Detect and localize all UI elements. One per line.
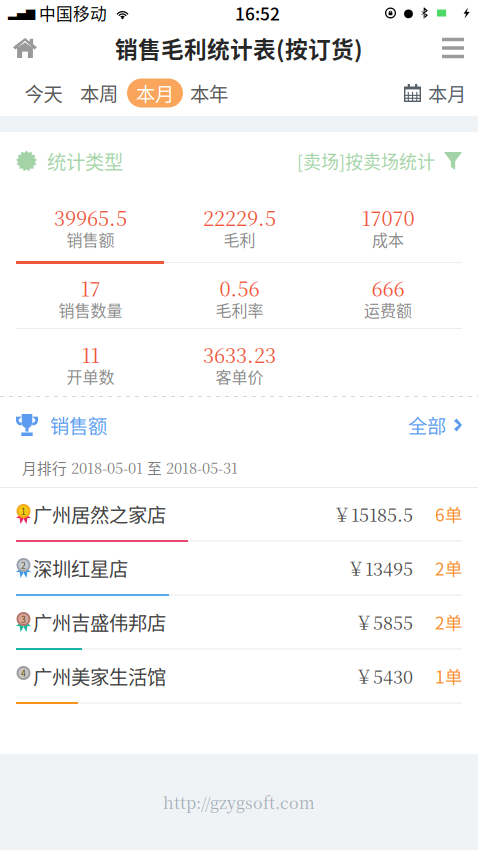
staticText: 17070 (361, 207, 414, 228)
staticText: http://gzygsoft.com (163, 790, 315, 813)
staticText: 1单 (435, 663, 462, 689)
staticText: 11 (81, 344, 99, 365)
staticText: 销售毛利统计表(按订货) (115, 32, 363, 64)
staticText: 2 (21, 559, 26, 571)
staticText: 本月 (136, 79, 174, 107)
button[interactable]: 1 (0, 488, 478, 542)
staticText: 3633.23 (203, 344, 276, 365)
staticText: 开单数 (66, 365, 114, 388)
staticText: 统计类型 (47, 147, 123, 175)
button[interactable]: 4 (0, 650, 478, 704)
staticText: 本月 (428, 79, 466, 107)
staticText: 4 (21, 667, 26, 679)
staticText: 2018-05-01 (71, 457, 143, 478)
staticText: [卖场]按卖场统计 (297, 148, 435, 174)
staticText: 毛利率 (215, 298, 263, 321)
staticText: 运费额 (364, 298, 412, 321)
staticText: ▂▄▆ (8, 6, 35, 20)
button[interactable]: 本周 (71, 76, 127, 110)
button[interactable]: Menu (428, 26, 478, 70)
staticText: 16:52 (235, 0, 280, 26)
button[interactable]: 全部 (408, 411, 462, 439)
staticText: 销售额 (50, 411, 107, 439)
button[interactable]: 3 (0, 596, 478, 650)
button[interactable]: 本年 (183, 76, 235, 110)
staticText: 中国移动 (39, 1, 107, 25)
staticText: ￥13495 (347, 555, 413, 581)
staticText: 2单 (435, 555, 462, 581)
staticText: 毛利 (223, 228, 255, 251)
staticText: ￥5855 (355, 609, 413, 635)
staticText: 至 (147, 457, 162, 478)
staticText: 成本 (372, 228, 404, 251)
button[interactable]: 2 (0, 542, 478, 596)
staticText: 666 (371, 278, 404, 298)
staticText: 22229.5 (203, 207, 276, 228)
button[interactable]: 本月 (404, 71, 478, 115)
staticText: 全部 (408, 411, 446, 439)
staticText: 0.56 (219, 278, 259, 298)
button[interactable]: Home (0, 26, 50, 70)
button[interactable]: [卖场]按卖场统计 (297, 148, 462, 174)
staticText: 月排行 (22, 457, 67, 478)
staticText: 1 (21, 505, 26, 517)
button[interactable]: 本月 (127, 78, 183, 107)
staticText: 39965.5 (54, 207, 127, 228)
staticText: 客单价 (215, 365, 263, 388)
staticText: 深圳红星店 (33, 554, 128, 582)
staticText: 广州吉盛伟邦店 (33, 608, 166, 636)
staticText: 今天 (24, 79, 62, 107)
staticText: 本年 (190, 79, 228, 107)
staticText: 2018-05-31 (166, 457, 238, 478)
staticText: ￥15185.5 (333, 501, 413, 527)
button[interactable]: 今天 (16, 76, 71, 110)
staticText: 销售数量 (58, 298, 122, 321)
staticText: 销售额 (66, 228, 114, 251)
staticText: 广州居然之家店 (33, 500, 166, 528)
staticText: 6单 (435, 501, 462, 527)
staticText: 广州美家生活馆 (33, 662, 166, 690)
staticText: 17 (80, 278, 100, 298)
staticText: 本周 (80, 79, 118, 107)
staticText: 3 (21, 613, 26, 625)
staticText: ￥5430 (355, 663, 413, 689)
staticText: 2单 (435, 609, 462, 635)
